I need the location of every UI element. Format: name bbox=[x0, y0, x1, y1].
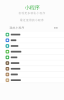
button[interactable] bbox=[0, 49, 64, 55]
staticText: 发现更多精彩小程序 bbox=[18, 12, 45, 15]
button[interactable] bbox=[0, 60, 64, 66]
button[interactable] bbox=[0, 72, 64, 77]
button[interactable] bbox=[0, 66, 64, 72]
staticText: 最近使用的小程序 bbox=[20, 18, 44, 22]
button[interactable] bbox=[0, 38, 64, 43]
button[interactable] bbox=[0, 77, 64, 83]
button[interactable] bbox=[0, 43, 64, 49]
button[interactable] bbox=[0, 32, 64, 38]
button[interactable]: More bbox=[54, 27, 58, 29]
staticText: 小程序 bbox=[24, 4, 39, 11]
button[interactable] bbox=[0, 55, 64, 60]
staticText: 我的小程序 bbox=[9, 26, 24, 30]
